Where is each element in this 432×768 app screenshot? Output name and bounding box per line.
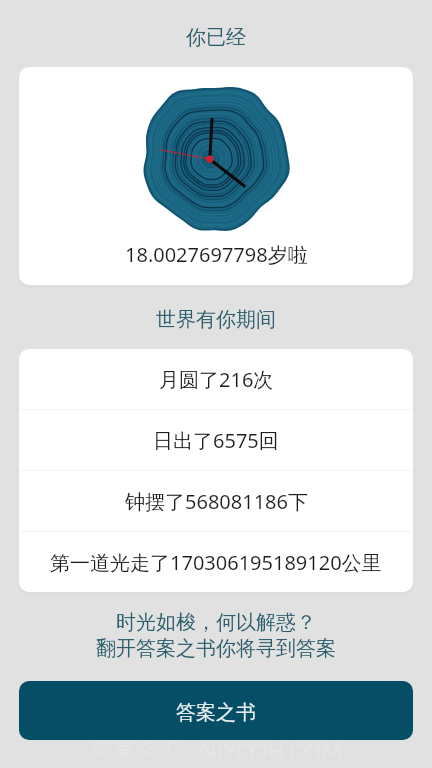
staticText: 月圆了216次 [159,366,274,393]
button[interactable]: 钟摆了568081186下 [19,471,413,531]
staticText: 第一道光走了170306195189120公里 [50,549,382,576]
button[interactable]: 月圆了216次 [19,349,413,409]
staticText: 世界有你期间 [156,307,276,332]
staticText: 18.0027697798岁啦 [125,241,308,268]
button[interactable]: 答案之书 [19,681,413,740]
staticText: 答案之书 [176,700,256,725]
staticText: 钟摆了568081186下 [125,488,308,515]
button[interactable]: 日出了6575回 [19,410,413,470]
staticText: 时光如梭，何以解惑？ [116,610,316,635]
button[interactable]: 树龄时钟 [141,83,289,231]
staticText: 翻开答案之书你将寻到答案 [96,636,336,661]
staticText: 你已经 [186,25,246,50]
button[interactable]: 第一道光走了170306195189120公里 [19,532,413,592]
staticText: 日出了6575回 [153,427,279,454]
staticText: 乐享轻汇 · NJYCQH.COM [89,735,343,757]
